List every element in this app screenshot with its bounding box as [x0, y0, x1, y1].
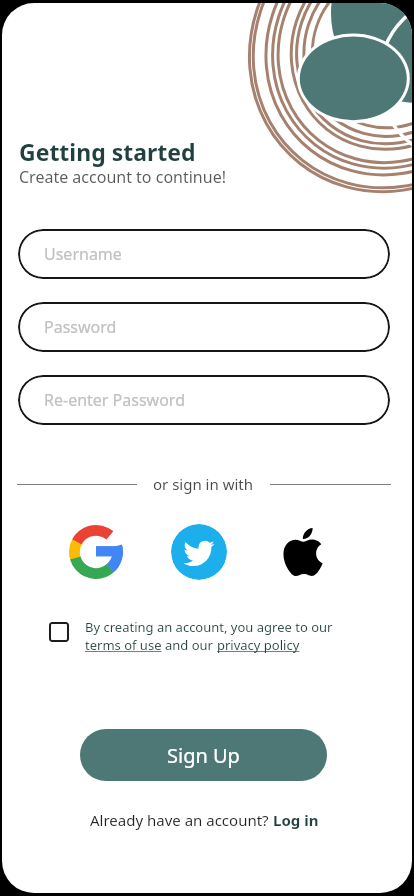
staticText: Re-enter Password [44, 389, 185, 411]
staticText: Already have an account? [90, 810, 273, 830]
button[interactable]: Log in [273, 810, 319, 830]
button[interactable]: Sign in with Twitter [171, 524, 227, 580]
staticText: Getting started [19, 136, 196, 167]
button[interactable]: terms of use [85, 636, 165, 654]
button[interactable]: Re-enter Password [18, 375, 390, 425]
staticText: Username [44, 243, 122, 265]
button[interactable]: Sign Up [80, 729, 327, 781]
staticText: Sign Up [167, 742, 240, 769]
button[interactable]: Sign in with Google [68, 524, 124, 580]
button[interactable]: Username [18, 229, 390, 279]
button[interactable]: Sign in with Apple [275, 524, 331, 580]
staticText: or sign in with [153, 474, 254, 494]
staticText: Create account to continue! [19, 166, 226, 188]
staticText: and our [165, 636, 217, 654]
staticText: Password [44, 316, 117, 338]
button[interactable]: Agree to terms [49, 622, 69, 642]
button[interactable]: privacy policy [217, 636, 300, 654]
staticText: By creating an account, you agree to our [85, 618, 333, 636]
button[interactable]: Password [18, 302, 390, 352]
